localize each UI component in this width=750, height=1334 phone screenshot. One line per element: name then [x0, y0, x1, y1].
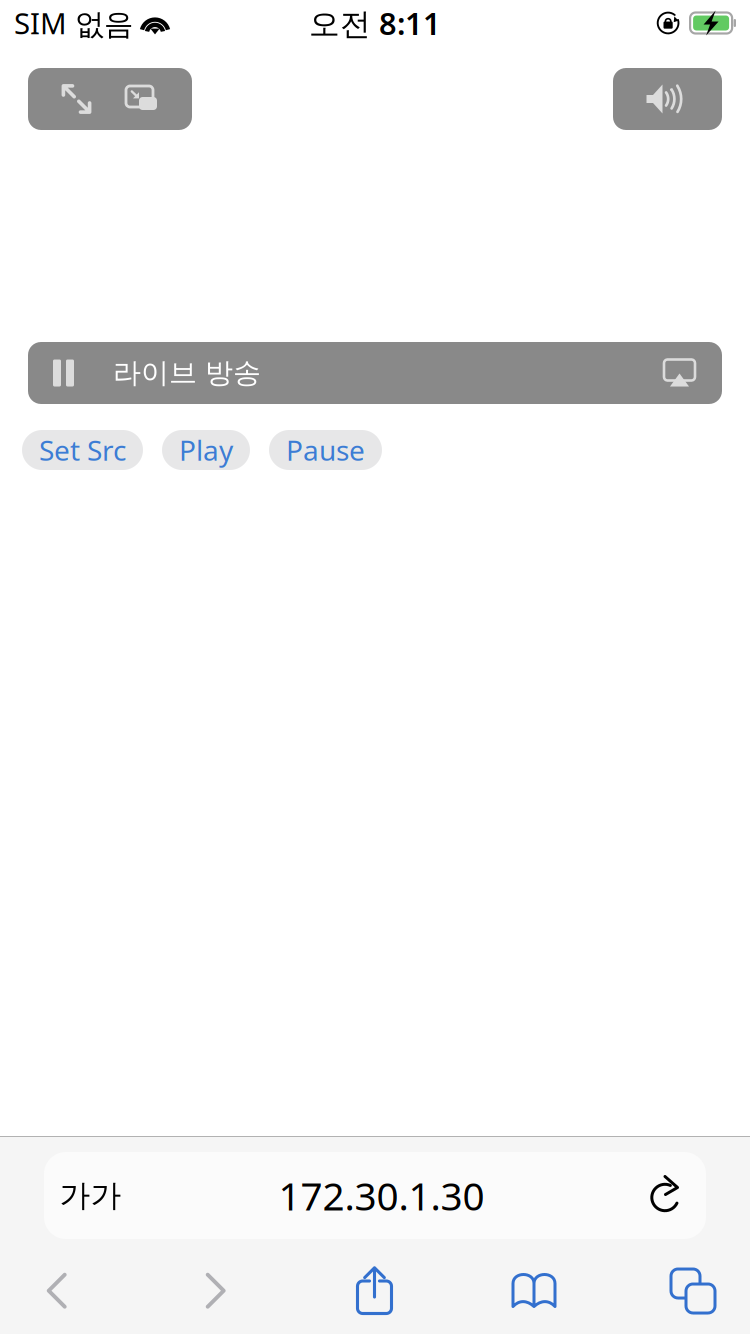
button[interactable]: Volume [613, 68, 722, 130]
staticText: Play [179, 431, 233, 469]
button[interactable]: Tabs [636, 1257, 750, 1325]
button[interactable]: Pause [269, 430, 382, 470]
button[interactable]: Forward [159, 1257, 273, 1325]
staticText: 라이브 방송 [113, 356, 261, 390]
button[interactable]: Play [162, 430, 250, 470]
staticText: 가가 [59, 1177, 121, 1214]
button[interactable]: AirPlay [637, 342, 722, 404]
staticText: Pause [286, 431, 365, 469]
staticText: 172.30.1.30 [278, 1170, 484, 1221]
button[interactable]: Full screen and picture in picture [28, 68, 192, 130]
staticText: Set Src [39, 431, 126, 469]
staticText: SIM 없음 [14, 3, 133, 42]
staticText: 오전 8:11 [309, 3, 441, 43]
button[interactable]: Reload [626, 1166, 706, 1224]
button[interactable]: Pause [28, 342, 99, 404]
button[interactable]: Back [0, 1257, 114, 1325]
button[interactable]: Set Src [22, 430, 143, 470]
button[interactable]: 가가 [44, 1166, 137, 1224]
button[interactable]: Share [318, 1257, 432, 1325]
button[interactable]: Bookmarks [477, 1257, 591, 1325]
